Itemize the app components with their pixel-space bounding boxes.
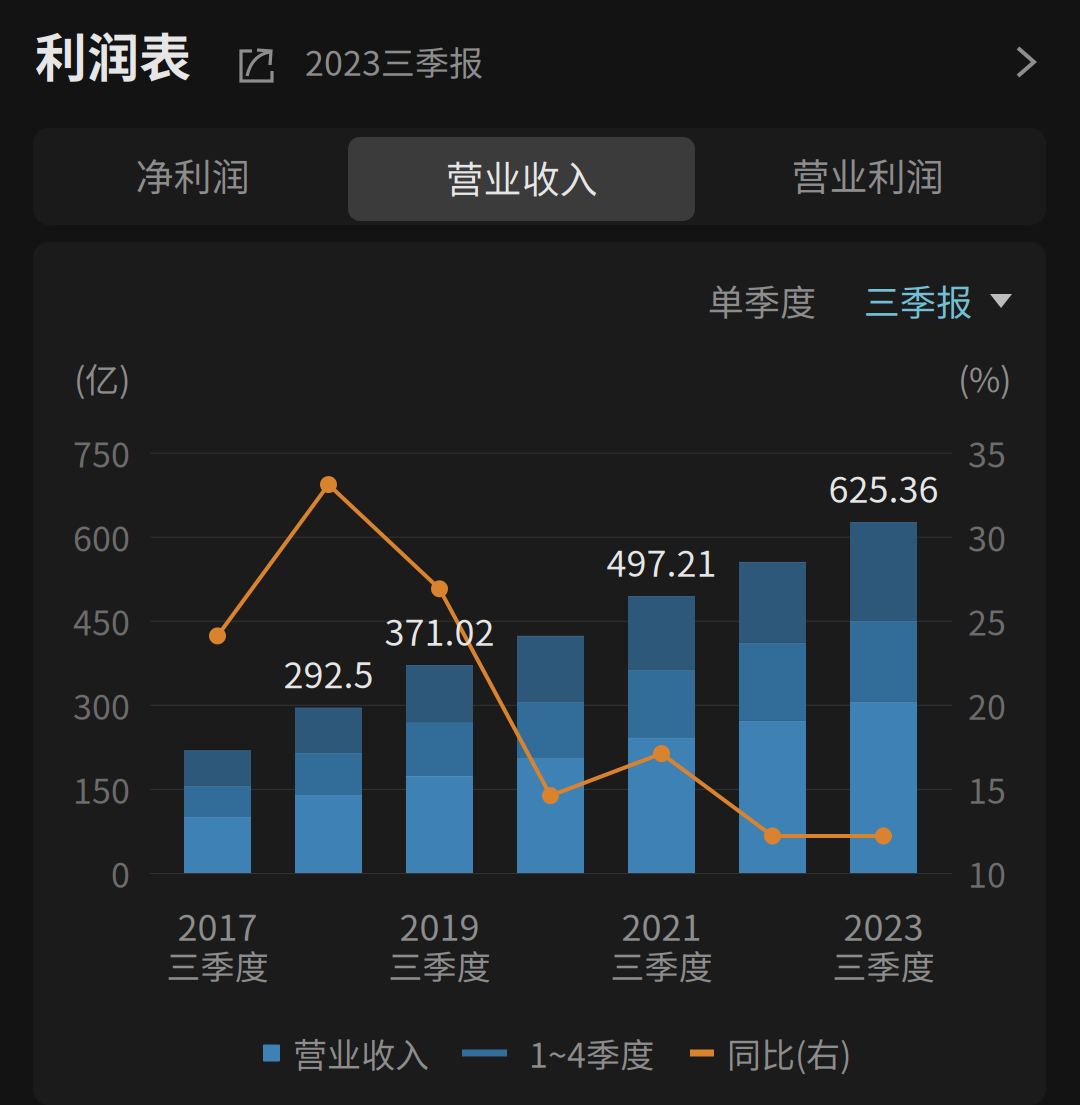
staticText: 10 (968, 848, 1006, 898)
button[interactable]: 营业利润 (710, 128, 1025, 225)
button[interactable]: 利润表 (35, 26, 191, 102)
button[interactable]: 净利润 (35, 128, 350, 225)
staticText: 292.5 (283, 647, 373, 699)
staticText: 2017 (177, 899, 257, 951)
staticText: 625.36 (828, 461, 938, 513)
button[interactable]: 分享 (191, 46, 275, 82)
staticText: 净利润 (135, 147, 249, 202)
staticText: 35 (968, 428, 1006, 477)
button[interactable]: 营业收入 (348, 137, 695, 221)
staticText: 三季度 (166, 940, 268, 990)
staticText: 2023三季报 (305, 36, 483, 86)
staticText: 2021 (621, 899, 701, 951)
staticText: (%) (958, 353, 1011, 402)
staticText: 2019 (399, 899, 479, 951)
staticText: 750 (73, 428, 130, 477)
staticText: 1~4季度 (529, 1028, 654, 1078)
button[interactable]: 查看详情 (1015, 47, 1037, 81)
staticText: 利润表 (35, 16, 191, 92)
staticText: 2023 (843, 899, 923, 951)
staticText: 0 (111, 848, 130, 898)
staticText: 三季度 (388, 940, 490, 990)
staticText: 三季报 (864, 274, 972, 326)
staticText: 150 (73, 764, 130, 813)
staticText: 15 (968, 764, 1006, 813)
staticText: (亿) (74, 353, 130, 402)
staticText: 营业收入 (445, 149, 597, 204)
staticText: 25 (968, 596, 1006, 645)
staticText: 三季度 (610, 940, 712, 990)
staticText: 497.21 (606, 535, 716, 587)
staticText: 371.02 (384, 604, 494, 656)
staticText: 同比(右) (727, 1028, 851, 1078)
staticText: 600 (73, 512, 130, 561)
staticText: 营业利润 (791, 147, 943, 202)
button[interactable]: 单季度 (708, 274, 816, 326)
button[interactable]: 三季报 (816, 274, 1010, 326)
staticText: 营业收入 (293, 1028, 429, 1078)
button[interactable]: 2023三季报 (275, 39, 483, 89)
staticText: 三季度 (832, 940, 934, 990)
staticText: 450 (73, 596, 130, 645)
staticText: 单季度 (708, 274, 816, 326)
staticText: 30 (968, 512, 1006, 561)
staticText: 300 (73, 680, 130, 729)
staticText: 20 (968, 680, 1006, 729)
